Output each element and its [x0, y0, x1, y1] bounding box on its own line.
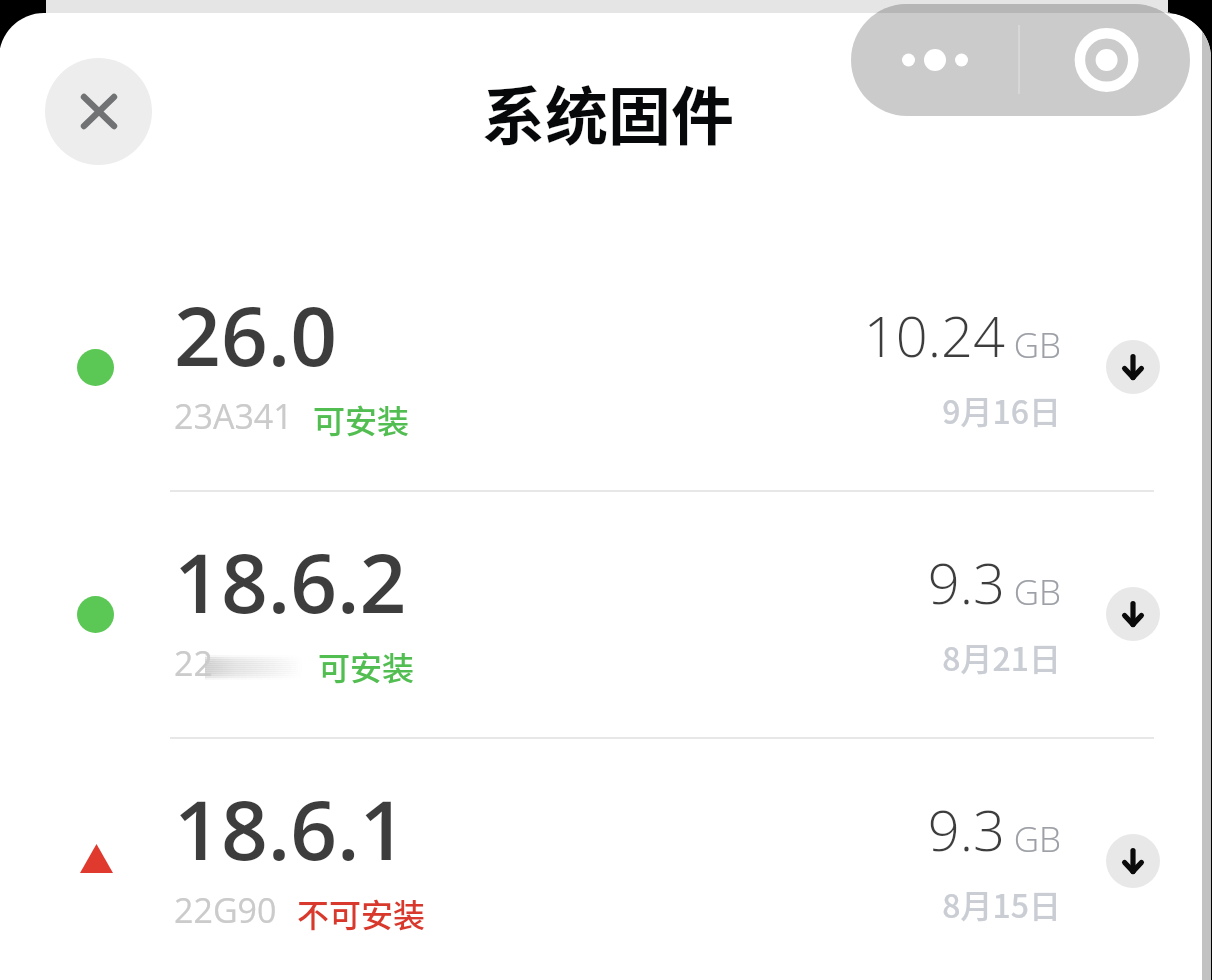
- staticText: 9.3: [0, 791, 1005, 867]
- staticText: 不可安装: [297, 890, 426, 936]
- staticText: 9月16日: [0, 387, 1061, 433]
- staticText: 22: [174, 640, 213, 686]
- button[interactable]: Exit mini program: [1020, 4, 1190, 116]
- staticText: 18.6.1: [174, 772, 407, 884]
- staticText: 可安装: [313, 396, 410, 442]
- staticText: 9.3: [0, 544, 1005, 620]
- staticText: 系统固件: [2, 66, 1211, 157]
- button[interactable]: 18.6.2: [0, 491, 1211, 738]
- staticText: GB: [0, 568, 1061, 616]
- button[interactable]: 18.6.1: [0, 738, 1211, 980]
- staticText: 8月15日: [0, 881, 1061, 927]
- staticText: 10.24: [0, 297, 1005, 373]
- staticText: 8月21日: [0, 634, 1061, 680]
- staticText: 可安装: [318, 643, 415, 689]
- button[interactable]: Close: [45, 58, 152, 165]
- staticText: GB: [0, 815, 1061, 863]
- staticText: 23A341: [174, 393, 293, 439]
- button[interactable]: Download: [1106, 340, 1160, 394]
- button[interactable]: 26.0: [0, 244, 1211, 491]
- staticText: GB: [0, 321, 1061, 369]
- staticText: 26.0: [174, 278, 338, 390]
- button[interactable]: More options: [851, 4, 1019, 116]
- button[interactable]: Download: [1106, 587, 1160, 641]
- staticText: 18.6.2: [174, 525, 407, 637]
- button[interactable]: Download: [1106, 834, 1160, 888]
- staticText: 22G90: [174, 887, 277, 933]
